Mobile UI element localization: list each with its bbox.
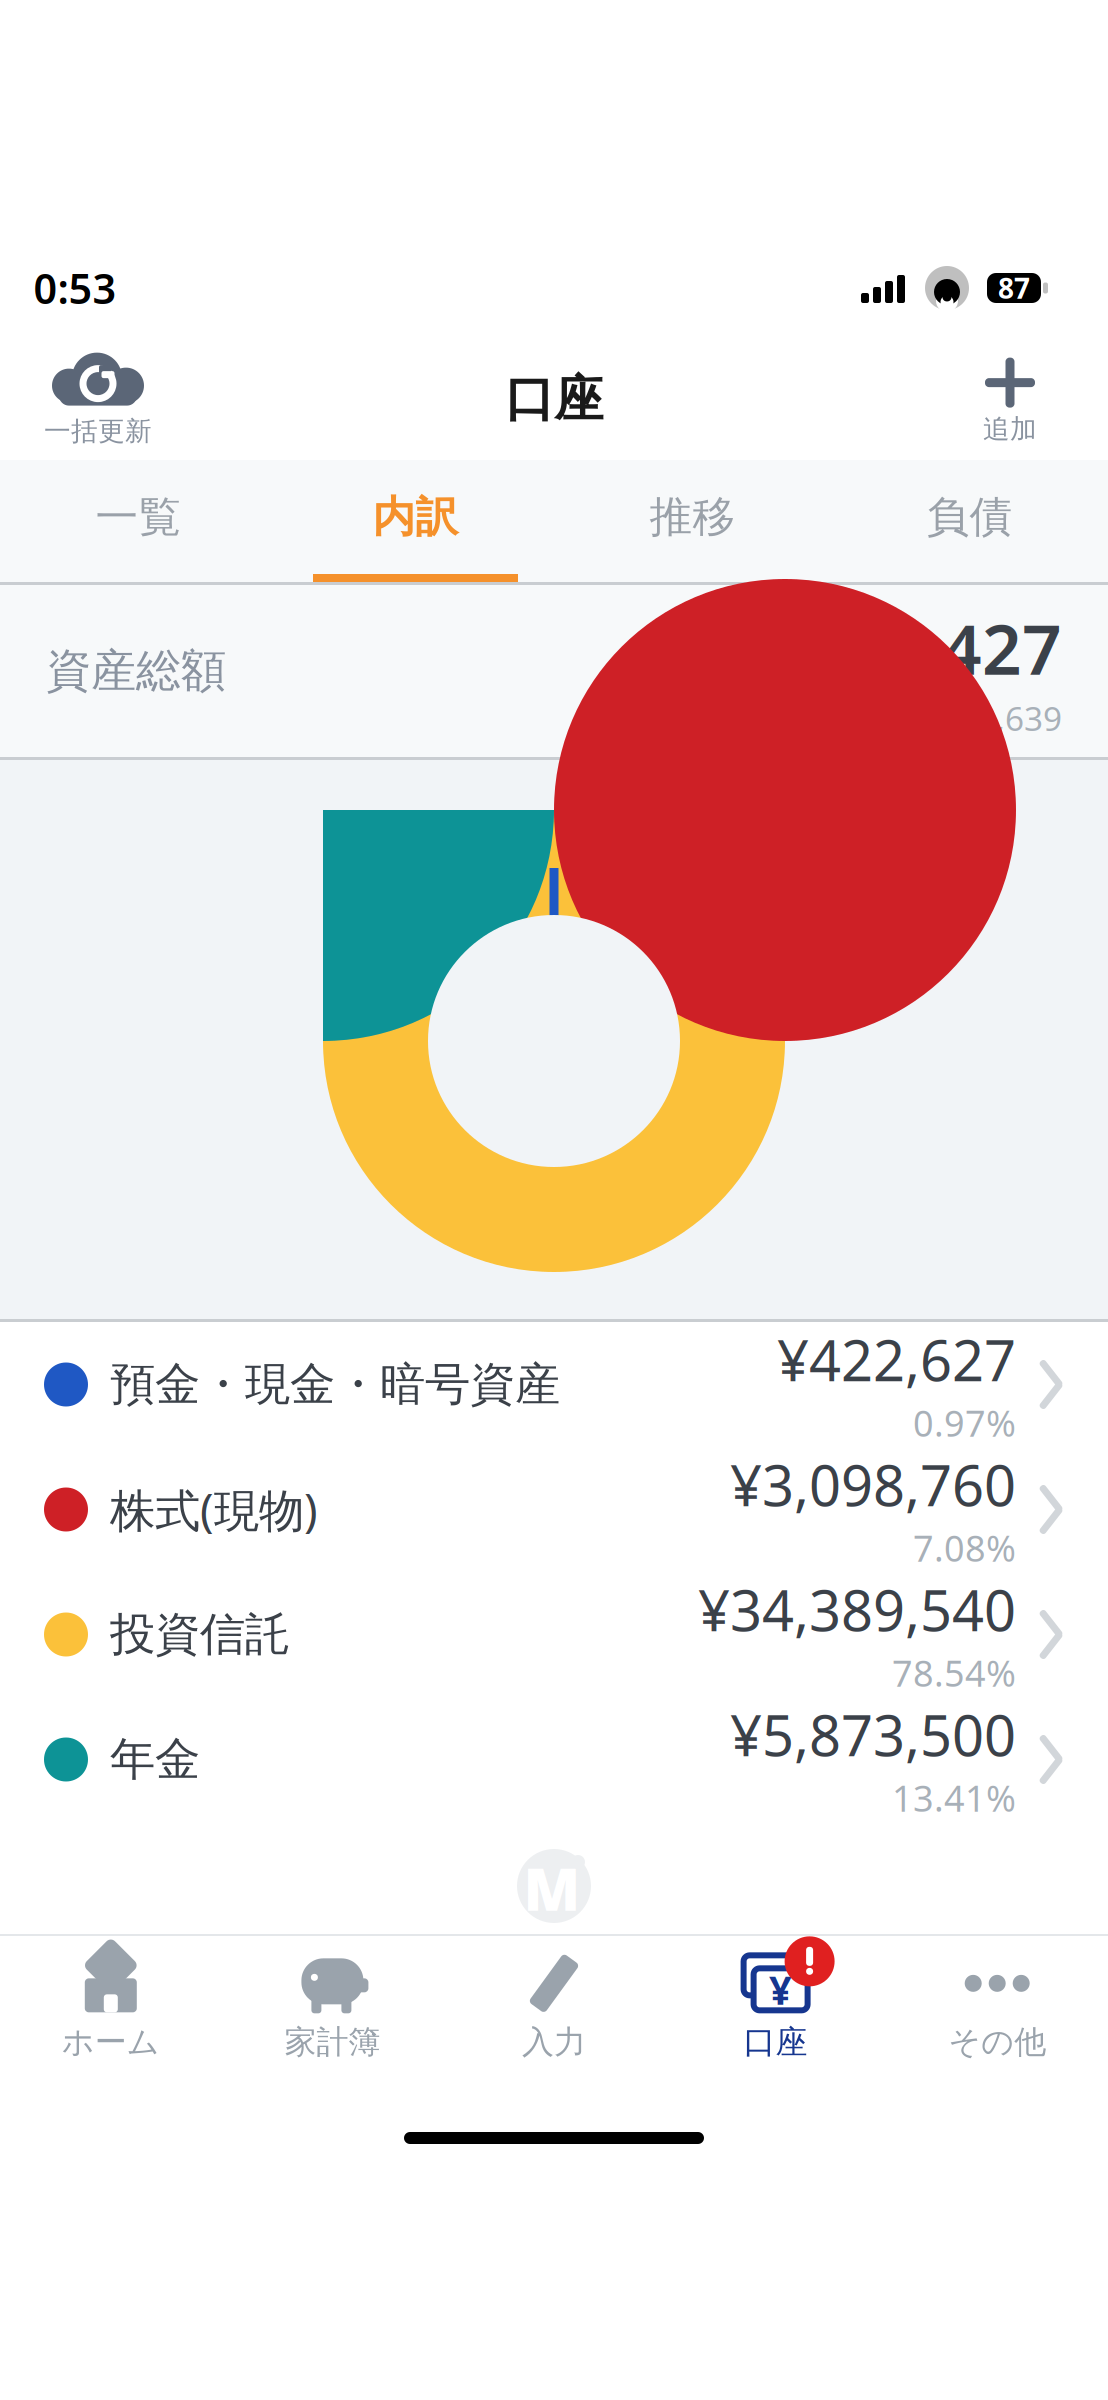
staticText: 0:53 <box>33 261 116 315</box>
staticText: 投資信託 <box>110 1607 290 1662</box>
staticText: 78.54% <box>892 1649 1016 1697</box>
staticText: ホーム <box>62 2022 160 2062</box>
staticText: その他 <box>948 2022 1046 2062</box>
staticText: ¥43,784,427 <box>664 602 1062 694</box>
staticText: ¥422,627 <box>777 1322 1016 1397</box>
button[interactable]: ¥ <box>665 1940 886 2072</box>
staticText: 推移 <box>649 491 735 543</box>
button[interactable]: 推移 <box>554 460 831 582</box>
staticText: 87 <box>998 269 1030 307</box>
button[interactable]: その他 <box>886 1940 1108 2072</box>
button[interactable]: ホーム <box>0 1940 222 2072</box>
staticText: 預金・現金・暗号資産 <box>110 1357 560 1412</box>
staticText: 追加 <box>983 413 1037 445</box>
button[interactable]: 預金・現金・暗号資産 <box>0 1322 1108 1447</box>
staticText: 家計簿 <box>284 2022 380 2062</box>
staticText: M <box>523 1849 580 1927</box>
button[interactable]: 年金 <box>0 1697 1108 1822</box>
staticText: 株式(現物) <box>110 1479 318 1540</box>
staticText: 年金 <box>110 1732 200 1787</box>
staticText: 内訳 <box>372 491 458 543</box>
staticText: 口座 <box>505 369 603 429</box>
staticText: ¥34,389,540 <box>698 1572 1016 1647</box>
button[interactable]: 一括更新 <box>18 344 178 454</box>
staticText: 一括更新 <box>44 415 152 447</box>
staticText: 口座 <box>744 2022 808 2062</box>
button[interactable]: 家計簿 <box>222 1940 443 2072</box>
staticText: 一覧 <box>95 491 181 543</box>
staticText: 前日比: ¥-542,639 <box>792 696 1062 740</box>
staticText: ¥ <box>769 1963 792 2016</box>
staticText: 負債 <box>926 491 1012 543</box>
staticText: 0.97% <box>913 1399 1016 1447</box>
button[interactable]: 追加 <box>930 344 1090 454</box>
staticText: ¥5,873,500 <box>730 1697 1016 1772</box>
staticText: 入力 <box>522 2022 586 2062</box>
button[interactable]: 一覧 <box>0 460 277 582</box>
button[interactable]: 負債 <box>831 460 1108 582</box>
staticText: 13.41% <box>892 1774 1016 1822</box>
staticText: ¥3,098,760 <box>730 1447 1016 1522</box>
button[interactable]: 内訳 <box>277 460 554 582</box>
button[interactable]: 投資信託 <box>0 1572 1108 1697</box>
button[interactable]: 入力 <box>443 1940 665 2072</box>
button[interactable]: 株式(現物) <box>0 1447 1108 1572</box>
staticText: 7.08% <box>913 1524 1016 1572</box>
staticText: 資産総額 <box>46 643 226 699</box>
